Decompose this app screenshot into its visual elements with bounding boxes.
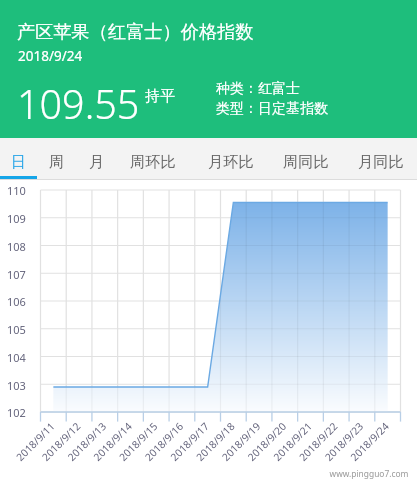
staticText: 类型：日定基指数 xyxy=(216,100,328,118)
staticText: 周环比 xyxy=(130,152,176,171)
button[interactable]: 日 xyxy=(0,138,35,179)
staticText: 月同比 xyxy=(358,152,404,171)
staticText: 产区苹果（红富士）价格指数 xyxy=(17,20,254,43)
staticText: 周同比 xyxy=(283,152,329,171)
button[interactable]: 月 xyxy=(75,138,115,179)
staticText: 日 xyxy=(11,152,27,171)
button[interactable]: 周同比 xyxy=(270,138,340,179)
staticText: 2018/9/24 xyxy=(18,47,83,65)
button[interactable]: 周 xyxy=(35,138,75,179)
staticText: 109.55 xyxy=(17,77,140,131)
staticText: 月环比 xyxy=(208,152,254,171)
staticText: 种类：红富士 xyxy=(216,80,300,98)
staticText: 周 xyxy=(49,152,65,171)
button[interactable]: 月同比 xyxy=(340,138,417,179)
staticText: 月 xyxy=(89,152,105,171)
button[interactable]: 月环比 xyxy=(190,138,270,179)
staticText: 持平 xyxy=(145,87,175,106)
button[interactable]: 周环比 xyxy=(115,138,190,179)
